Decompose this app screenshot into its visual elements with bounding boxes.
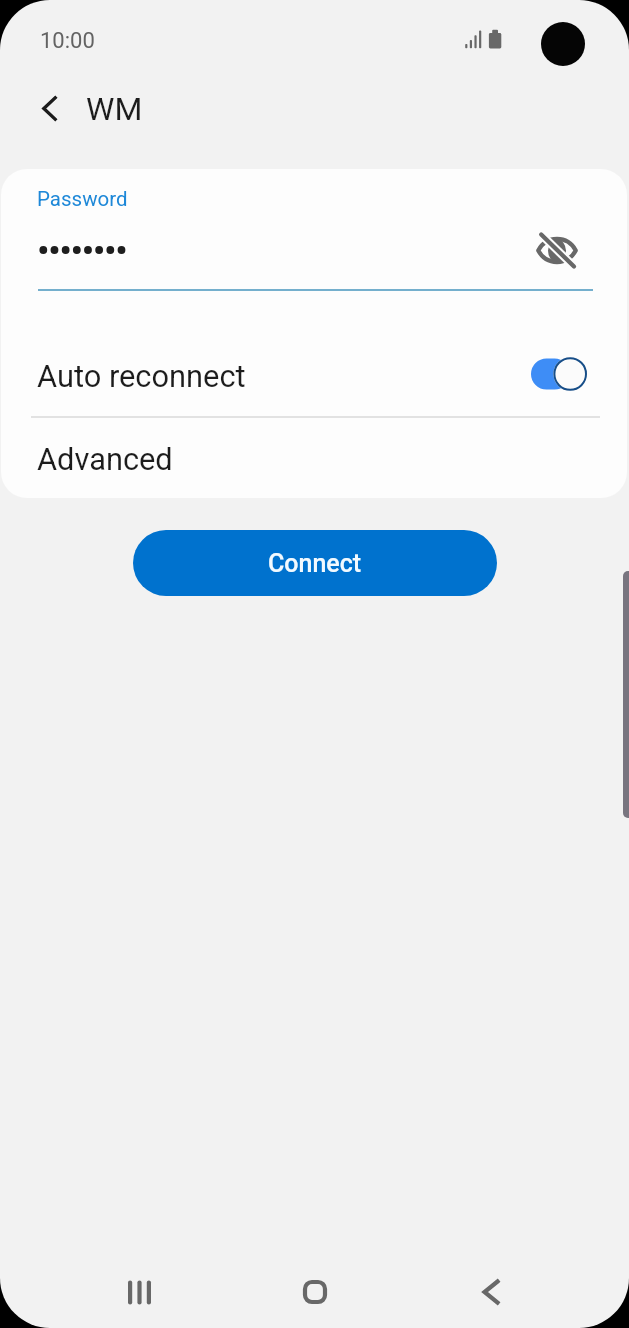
staticText: Password: [37, 187, 128, 211]
button[interactable]: Navigate up: [25, 84, 73, 132]
button[interactable]: Connect: [133, 530, 497, 596]
staticText: WM: [86, 90, 143, 128]
button[interactable]: Home: [275, 1252, 355, 1328]
staticText: 10:00: [40, 28, 95, 54]
button[interactable]: Auto reconnect: [1, 335, 627, 416]
button[interactable]: Show password: [525, 218, 589, 282]
button[interactable]: Recent apps: [99, 1252, 179, 1328]
button[interactable]: Auto reconnect: [531, 356, 587, 392]
button[interactable]: Back: [451, 1252, 531, 1328]
button[interactable]: Advanced: [1, 419, 627, 498]
staticText: Connect: [268, 549, 362, 578]
staticText: Auto reconnect: [37, 358, 246, 394]
staticText: Advanced: [37, 441, 173, 477]
